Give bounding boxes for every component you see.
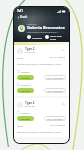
staticText: Open until 22:00 (50, 34, 66, 40)
button[interactable]: Open until 22:00 (45, 34, 66, 40)
button[interactable]: Start charging (44, 75, 66, 80)
button[interactable]: Available (17, 116, 34, 121)
staticText: AC 22 kW (25, 105, 36, 108)
staticText: Available (20, 117, 31, 120)
button[interactable]: Type 2 (14, 98, 69, 137)
button[interactable]: Available (27, 35, 43, 39)
staticText: Location (27, 22, 37, 25)
staticText: Available (20, 76, 31, 79)
staticText: Available (32, 36, 43, 39)
staticText: 9:41 (17, 9, 23, 13)
button[interactable]: Collapse (61, 48, 66, 53)
staticText: Available (20, 89, 31, 92)
staticText: Price (17, 124, 23, 127)
button[interactable]: Collapse (61, 102, 66, 107)
staticText: Back (20, 15, 28, 19)
staticText: Stanisława Przybyszewskiego 1 (27, 31, 59, 34)
staticText: AC 22 kW (25, 51, 36, 54)
staticText: Socket 1 (21, 111, 31, 114)
button[interactable]: Start charging (44, 116, 66, 121)
staticText: Type 2 (25, 101, 35, 105)
staticText: Socket 2 (21, 83, 31, 86)
button[interactable]: Back (16, 14, 29, 20)
button[interactable]: Available (17, 75, 34, 80)
staticText: Start charging (47, 76, 63, 79)
staticText: Socket 1 (21, 70, 31, 73)
button[interactable]: Type 2 (14, 45, 69, 96)
button[interactable]: Available (17, 88, 34, 93)
staticText: Start charging (47, 89, 63, 92)
staticText: Starting fee 10,00 zł, after starting 1,… (17, 131, 62, 134)
staticText: Start charging (47, 117, 63, 120)
button[interactable]: Start charging (44, 88, 66, 93)
staticText: Type 2 (25, 47, 35, 51)
staticText: PLN 2.19/kWh (50, 124, 66, 127)
staticText: Price (17, 56, 23, 59)
staticText: PLN 2.19/kWh (50, 56, 66, 59)
staticText: Starting fee 10,00 zł, after starting 1,… (17, 63, 62, 66)
staticText: Galeria Bronowice (27, 25, 65, 31)
